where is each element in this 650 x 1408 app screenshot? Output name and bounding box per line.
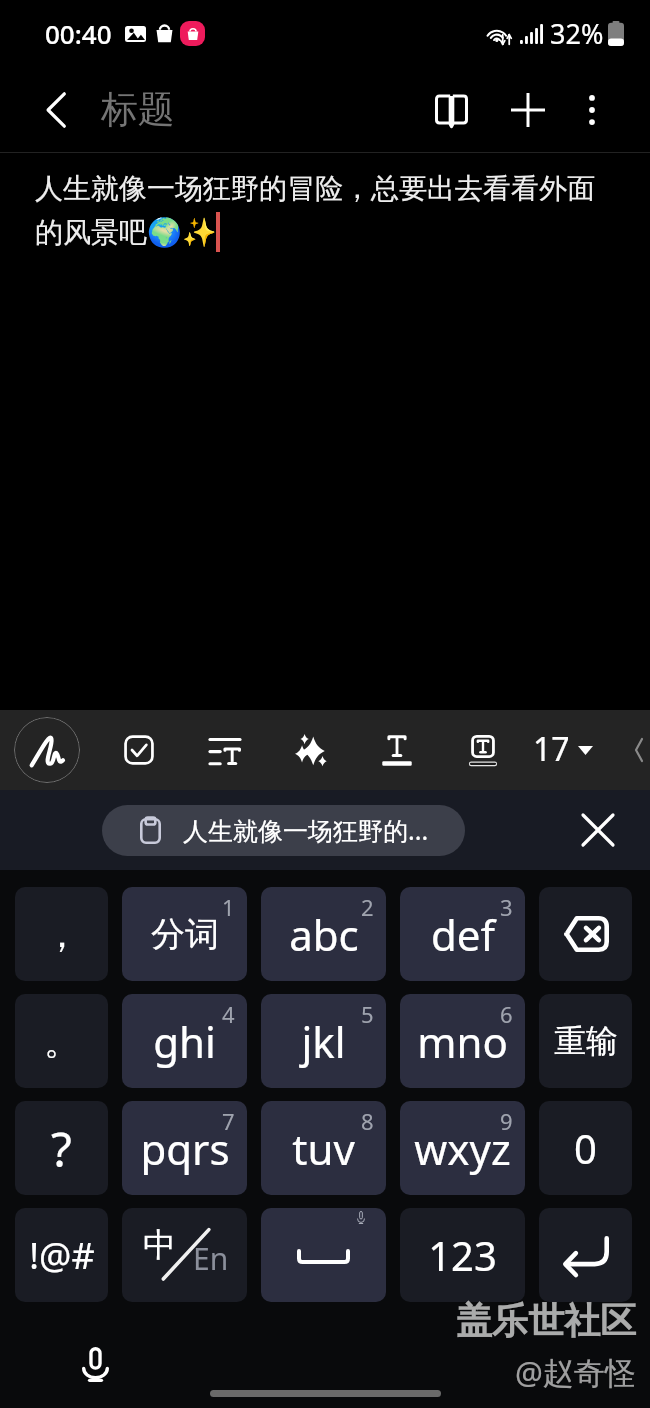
button[interactable]: def	[400, 887, 525, 981]
button[interactable]: Add	[498, 80, 558, 140]
button[interactable]: del	[539, 887, 632, 981]
button[interactable]: 。	[15, 994, 108, 1088]
staticText: abc	[289, 906, 359, 963]
staticText: @赵奇怪	[515, 1351, 636, 1393]
button[interactable]: pqrs	[122, 1101, 247, 1195]
button[interactable]: 0	[539, 1101, 632, 1195]
staticText: 7	[222, 1106, 235, 1136]
button[interactable]: Close	[570, 802, 626, 858]
staticText: 3	[500, 892, 513, 922]
staticText: 4	[222, 999, 235, 1029]
staticText: 8	[361, 1106, 374, 1136]
button[interactable]: Voice input	[68, 1337, 122, 1391]
staticText: 中	[143, 1224, 176, 1266]
staticText: wxyz	[414, 1120, 511, 1177]
button[interactable]: Handwriting	[14, 717, 80, 783]
staticText: 。	[44, 1019, 80, 1064]
button[interactable]: ghi	[122, 994, 247, 1088]
button[interactable]: Checklist	[109, 720, 169, 780]
staticText: 人生就像一场狂野的...	[183, 813, 429, 847]
staticText: mno	[417, 1013, 508, 1070]
staticText: 0	[574, 1121, 597, 1175]
button[interactable]: space	[261, 1208, 386, 1302]
staticText: 9	[500, 1106, 513, 1136]
button[interactable]: jkl	[261, 994, 386, 1088]
button[interactable]: 重输	[539, 994, 632, 1088]
staticText: ，	[44, 912, 80, 957]
button[interactable]: ，	[15, 887, 108, 981]
button[interactable]: Back	[24, 82, 80, 138]
staticText: ?	[51, 1116, 72, 1181]
button[interactable]: abc	[261, 887, 386, 981]
button[interactable]: AI suggestions	[281, 720, 341, 780]
button[interactable]: tuv	[261, 1101, 386, 1195]
button[interactable]: !@#	[15, 1208, 108, 1302]
staticText: 人生就像一场狂野的冒险，总要出去看看外面的风景吧🌍✨	[35, 171, 622, 251]
staticText: def	[431, 906, 495, 963]
staticText: 123	[428, 1228, 497, 1282]
button[interactable]: Text style	[367, 720, 427, 780]
staticText: En	[193, 1238, 229, 1279]
button[interactable]: wxyz	[400, 1101, 525, 1195]
staticText: 分词	[151, 913, 219, 956]
button[interactable]: 分词	[122, 887, 247, 981]
staticText: 重输	[554, 1021, 618, 1061]
button[interactable]: Reading view	[421, 80, 481, 140]
button[interactable]: Paragraph	[195, 720, 255, 780]
button[interactable]: Text box	[453, 720, 513, 780]
staticText: 1	[222, 892, 235, 922]
button[interactable]: enter	[539, 1208, 632, 1302]
staticText: 32%	[550, 15, 604, 52]
staticText: 00:40	[45, 16, 112, 51]
staticText: 标题	[101, 86, 175, 133]
button[interactable]: More options	[562, 80, 622, 140]
staticText: 17	[533, 727, 570, 771]
staticText: ghi	[153, 1013, 216, 1070]
staticText: tuv	[292, 1120, 355, 1177]
button[interactable]: 人生就像一场狂野的...	[102, 805, 465, 856]
button[interactable]: mno	[400, 994, 525, 1088]
staticText: 5	[361, 999, 374, 1029]
staticText: pqrs	[140, 1120, 230, 1177]
button[interactable]: 17	[533, 727, 593, 773]
button[interactable]: lang	[122, 1208, 247, 1302]
staticText: 2	[361, 892, 374, 922]
staticText: !@#	[29, 1231, 95, 1280]
staticText: 6	[500, 999, 513, 1029]
button[interactable]: 123	[400, 1208, 525, 1302]
staticText: 盖乐世社区	[456, 1298, 636, 1343]
button[interactable]: ?	[15, 1101, 108, 1195]
staticText: jkl	[301, 1013, 346, 1070]
